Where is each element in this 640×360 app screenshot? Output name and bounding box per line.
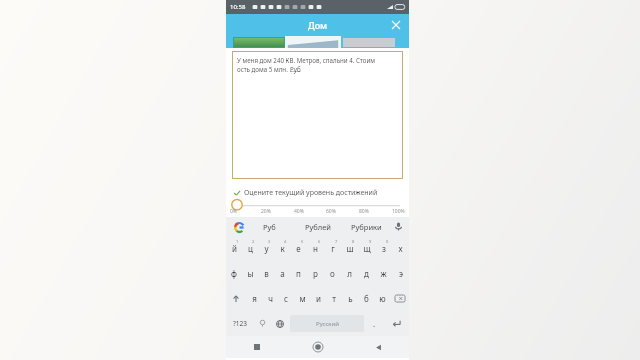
button[interactable]: Русский [290, 315, 364, 332]
staticText: 3 [268, 239, 271, 244]
staticText: з [382, 243, 386, 254]
staticText: ш [346, 243, 354, 254]
button[interactable]: Achievement level slider [226, 199, 409, 215]
button[interactable]: Оцените текущий уровень достижений [233, 186, 409, 199]
staticText: я [252, 293, 257, 304]
staticText: ы [247, 268, 254, 279]
staticText: э [399, 268, 403, 279]
button[interactable]: ц [242, 236, 258, 261]
button[interactable]: Emoji [253, 311, 271, 336]
button[interactable]: Руб [245, 217, 294, 236]
button[interactable]: Voice input [390, 217, 406, 236]
staticText: Русский [316, 320, 339, 328]
button[interactable]: с [278, 286, 294, 311]
button[interactable]: е [290, 236, 307, 261]
staticText: о [330, 268, 335, 279]
staticText: у [264, 243, 269, 254]
button[interactable]: Enter [383, 311, 409, 336]
button[interactable]: п [290, 261, 307, 286]
button[interactable]: л [341, 261, 358, 286]
staticText: а [280, 268, 285, 279]
button[interactable]: й [226, 236, 242, 261]
button[interactable]: Change language [271, 311, 288, 336]
button[interactable]: Shift [226, 286, 246, 311]
button[interactable]: у [258, 236, 274, 261]
button[interactable]: Recents [226, 336, 287, 358]
staticText: 1 [236, 239, 239, 244]
staticText: 100% [392, 208, 405, 215]
staticText: 60% [326, 208, 336, 215]
staticText: ю [379, 293, 386, 304]
button[interactable]: ю [374, 286, 390, 311]
staticText: 4 [284, 239, 287, 244]
button[interactable]: Backspace [390, 286, 409, 311]
button[interactable]: ь [342, 286, 358, 311]
button[interactable]: щ [358, 236, 375, 261]
button[interactable]: х [392, 236, 409, 261]
button[interactable]: о [324, 261, 341, 286]
button[interactable]: н [307, 236, 324, 261]
staticText: к [280, 243, 285, 254]
button[interactable]: Back [348, 336, 409, 358]
staticText: ь [348, 293, 353, 304]
staticText: 40% [294, 208, 304, 215]
button[interactable]: и [310, 286, 326, 311]
button[interactable]: Google [233, 221, 245, 233]
staticText: п [296, 268, 301, 279]
button[interactable]: . [366, 311, 383, 336]
staticText: б [364, 293, 369, 304]
staticText: ч [268, 293, 273, 304]
staticText: в [264, 268, 269, 279]
button[interactable]: ч [262, 286, 278, 311]
button[interactable]: ?123 [226, 311, 253, 336]
staticText: 8 [352, 239, 355, 244]
button[interactable]: э [392, 261, 409, 286]
button[interactable]: т [326, 286, 342, 311]
button[interactable]: Photo 1 [233, 37, 285, 48]
staticText: д [364, 268, 369, 279]
staticText: Рублей [305, 222, 332, 232]
button[interactable]: з [375, 236, 392, 261]
button[interactable]: У меня дом 240 КВ. Метров, спальни 4. Ст… [232, 51, 403, 179]
button[interactable]: м [294, 286, 310, 311]
button[interactable]: Photo 2 [285, 36, 341, 48]
staticText: 2 [252, 239, 255, 244]
button[interactable]: в [258, 261, 274, 286]
staticText: Рубрики [351, 222, 382, 232]
button[interactable]: ф [226, 261, 242, 286]
staticText: У меня дом 240 КВ. Метров, спальни 4. Ст… [237, 56, 376, 64]
button[interactable]: г [324, 236, 341, 261]
button[interactable]: ш [341, 236, 358, 261]
staticText: ж [380, 268, 387, 279]
staticText: 7 [335, 239, 338, 244]
staticText: 5 [301, 239, 304, 244]
button[interactable]: б [358, 286, 374, 311]
staticText: Оцените текущий уровень достижений [244, 188, 378, 198]
button[interactable]: Рублей [294, 217, 342, 236]
staticText: Руб [263, 222, 276, 232]
staticText: 6 [318, 239, 321, 244]
staticText: 20% [261, 208, 271, 215]
button[interactable]: д [358, 261, 375, 286]
staticText: . [373, 318, 376, 329]
button[interactable]: к [274, 236, 290, 261]
button[interactable]: Close [388, 17, 404, 33]
button[interactable]: Home [287, 336, 348, 358]
staticText: ость дома 5 млн. [237, 65, 290, 73]
staticText: Руб [290, 65, 301, 73]
staticText: е [296, 243, 301, 254]
staticText: и [316, 293, 321, 304]
staticText: щ [363, 243, 371, 254]
staticText: ф [231, 268, 237, 279]
button[interactable]: ж [375, 261, 392, 286]
button[interactable]: р [307, 261, 324, 286]
staticText: г [331, 243, 335, 254]
staticText: 10:58 [230, 3, 246, 11]
staticText: л [347, 268, 352, 279]
staticText: с [284, 293, 288, 304]
button[interactable]: ы [242, 261, 258, 286]
button[interactable]: Рубрики [342, 217, 390, 236]
button[interactable]: а [274, 261, 290, 286]
button[interactable]: я [246, 286, 262, 311]
